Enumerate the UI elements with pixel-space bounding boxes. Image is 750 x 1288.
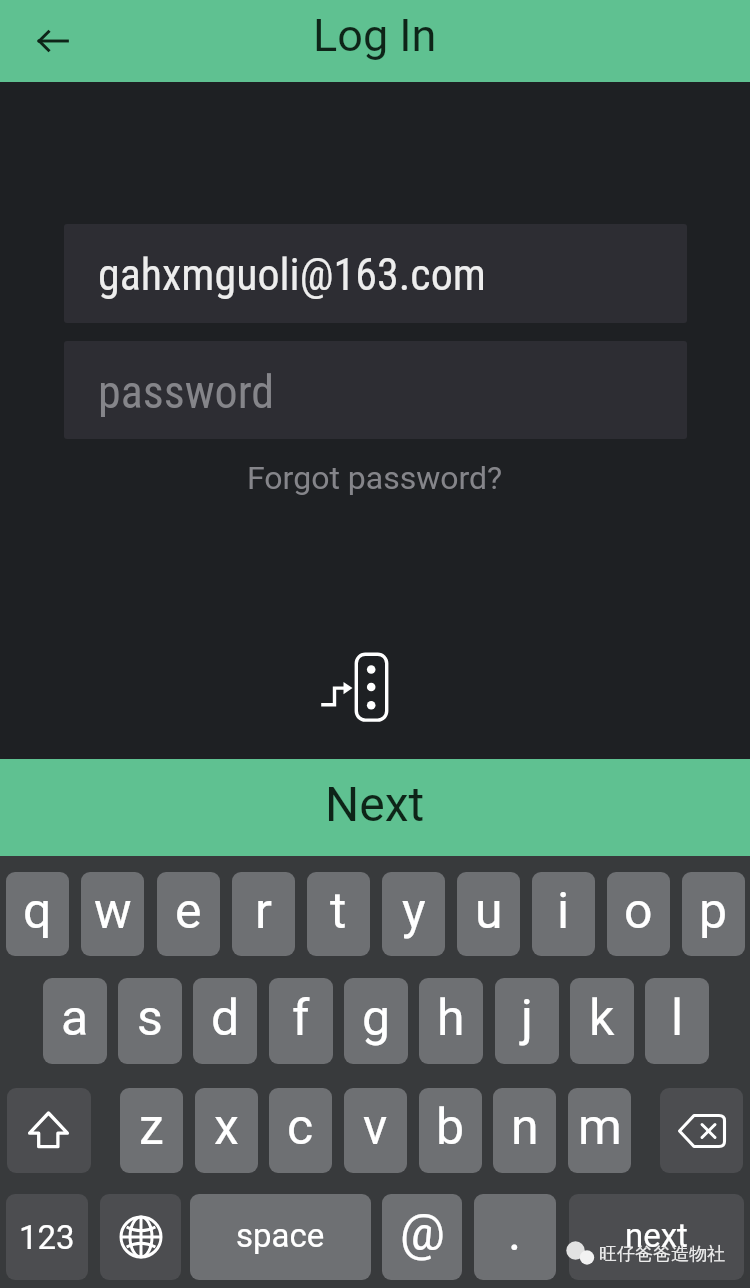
button[interactable]: next — [569, 1194, 744, 1280]
staticText: g — [362, 989, 391, 1048]
staticText: r — [255, 882, 272, 941]
button[interactable]: u — [457, 872, 520, 956]
staticText: . — [508, 1204, 522, 1263]
staticText: n — [511, 1098, 539, 1157]
staticText: f — [292, 989, 310, 1048]
button[interactable]: r — [232, 872, 295, 956]
staticText: k — [589, 989, 615, 1048]
button[interactable]: b — [419, 1088, 482, 1173]
staticText: u — [475, 882, 503, 941]
staticText: j — [521, 989, 533, 1048]
button[interactable]: @ — [382, 1194, 462, 1280]
button[interactable]: gahxmguoli@163.com — [64, 224, 687, 323]
staticText: t — [330, 882, 347, 941]
button[interactable]: d — [193, 978, 257, 1064]
staticText: a — [61, 989, 89, 1048]
staticText: p — [699, 882, 728, 941]
staticText: q — [23, 882, 52, 941]
button[interactable]: v — [344, 1088, 407, 1173]
staticText: 旺仔爸爸造物社 — [599, 1243, 725, 1266]
staticText: d — [211, 989, 240, 1048]
button[interactable]: Backspace — [660, 1088, 743, 1173]
other: Switch input method — [318, 648, 398, 728]
button[interactable]: Back — [18, 0, 90, 82]
staticText: next — [625, 1216, 688, 1255]
button[interactable]: n — [493, 1088, 556, 1173]
staticText: Forgot password? — [247, 459, 503, 497]
staticText: Next — [325, 776, 425, 832]
button[interactable]: o — [607, 872, 670, 956]
staticText: c — [287, 1098, 314, 1157]
staticText: Log In — [313, 9, 437, 62]
button[interactable]: g — [344, 978, 408, 1064]
button[interactable]: i — [532, 872, 595, 956]
staticText: l — [671, 989, 684, 1048]
button[interactable]: . — [474, 1194, 556, 1280]
staticText: e — [175, 882, 202, 941]
button[interactable]: Forgot password? — [215, 452, 535, 504]
button[interactable]: z — [120, 1088, 183, 1173]
staticText: y — [402, 882, 426, 941]
button[interactable]: 123 — [6, 1194, 88, 1280]
staticText: m — [578, 1098, 622, 1157]
staticText: gahxmguoli@163.com — [98, 249, 486, 301]
staticText: o — [624, 882, 653, 941]
button[interactable]: c — [269, 1088, 332, 1173]
staticText: w — [94, 882, 132, 941]
button[interactable]: space — [190, 1194, 371, 1280]
button[interactable]: w — [81, 872, 144, 956]
staticText: z — [139, 1098, 164, 1157]
staticText: 123 — [19, 1218, 75, 1257]
button[interactable]: Change language — [100, 1194, 181, 1280]
staticText: v — [363, 1098, 388, 1157]
staticText: b — [436, 1098, 465, 1157]
button[interactable]: l — [645, 978, 709, 1064]
button[interactable]: t — [307, 872, 370, 956]
button[interactable]: a — [43, 978, 107, 1064]
button[interactable]: password — [64, 341, 687, 439]
button[interactable]: f — [269, 978, 333, 1064]
button[interactable]: j — [495, 978, 559, 1064]
button[interactable]: Shift — [7, 1088, 91, 1173]
button[interactable]: q — [6, 872, 69, 956]
staticText: password — [98, 365, 275, 419]
button[interactable]: h — [419, 978, 483, 1064]
button[interactable]: e — [157, 872, 220, 956]
button[interactable]: k — [570, 978, 634, 1064]
staticText: i — [557, 882, 570, 941]
button[interactable]: Next — [0, 759, 750, 856]
button[interactable]: s — [118, 978, 182, 1064]
staticText: s — [137, 989, 163, 1048]
staticText: space — [236, 1216, 325, 1255]
staticText: h — [437, 989, 465, 1048]
staticText: @ — [400, 1204, 445, 1263]
button[interactable]: m — [568, 1088, 631, 1173]
button[interactable]: y — [382, 872, 445, 956]
staticText: x — [214, 1098, 239, 1157]
button[interactable]: p — [682, 872, 745, 956]
button[interactable]: x — [195, 1088, 258, 1173]
